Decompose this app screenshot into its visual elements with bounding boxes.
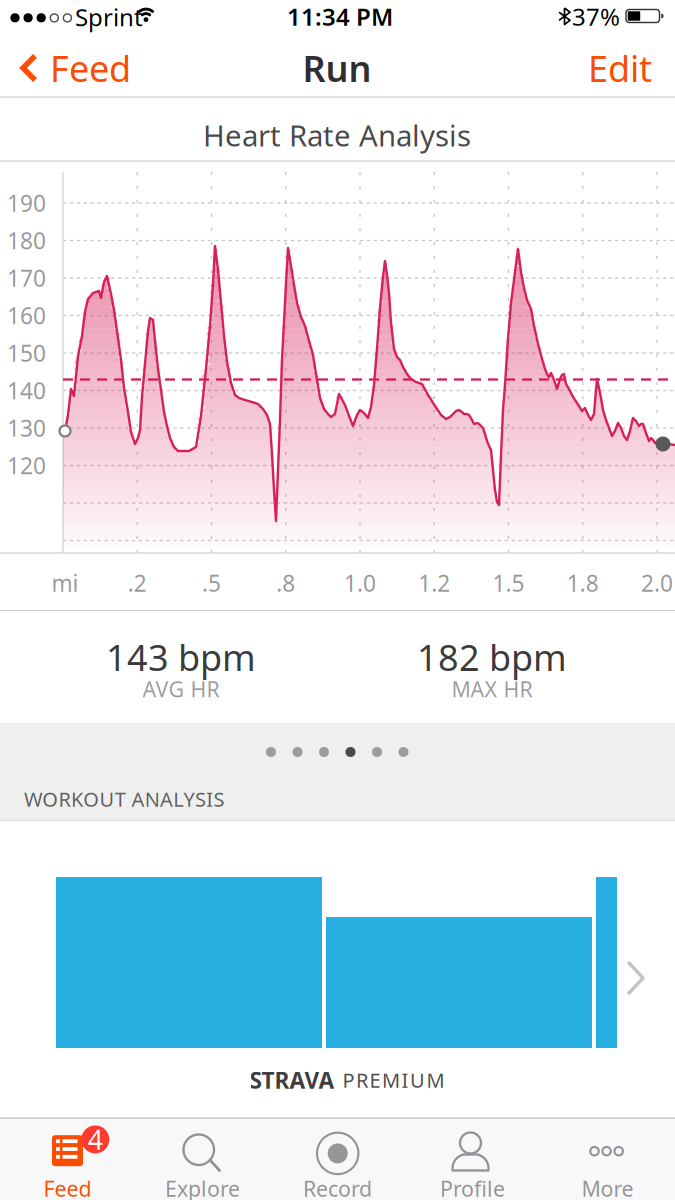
staticText: 37% [572, 1, 620, 32]
staticText: 160 [7, 300, 46, 330]
button[interactable]: Explore [135, 1118, 270, 1200]
staticText: PREMIUM [342, 1067, 444, 1093]
staticText: More [581, 1174, 633, 1200]
button[interactable]: More [540, 1118, 675, 1200]
staticText: 180 [7, 225, 46, 255]
button[interactable]: Workout analysis details [0, 830, 675, 1065]
button[interactable]: Profile [405, 1118, 540, 1200]
staticText: Explore [165, 1174, 240, 1200]
staticText: 1.2 [418, 568, 450, 598]
staticText: 143 bpm [106, 633, 256, 681]
staticText: AVG HR [142, 675, 219, 703]
staticText: Profile [440, 1174, 505, 1200]
staticText: 11:34 PM [287, 1, 393, 32]
staticText: STRAVA [249, 1065, 334, 1095]
staticText: 190 [7, 188, 46, 218]
staticText: 130 [7, 413, 46, 443]
staticText: 150 [7, 338, 46, 368]
staticText: Feed [43, 1174, 91, 1200]
staticText: Record [303, 1174, 372, 1200]
staticText: 182 bpm [417, 633, 567, 681]
staticText: Edit [588, 44, 652, 92]
staticText: 120 [7, 450, 46, 480]
button[interactable]: 4 [0, 1118, 135, 1200]
staticText: Heart Rate Analysis [203, 115, 471, 154]
button[interactable]: Record [270, 1118, 405, 1200]
staticText: 2.0 [641, 568, 673, 598]
button[interactable]: Back [20, 46, 180, 90]
staticText: Run [302, 44, 371, 92]
staticText: Sprint [75, 1, 143, 33]
staticText: WORKOUT ANALYSIS [24, 786, 224, 812]
staticText: .8 [276, 568, 295, 598]
staticText: 140 [7, 375, 46, 405]
staticText: 1.8 [567, 568, 599, 598]
staticText: .5 [202, 568, 221, 598]
staticText: 170 [7, 263, 46, 293]
button[interactable]: Edit [580, 46, 660, 90]
staticText: 1.0 [344, 568, 376, 598]
staticText: 4 [88, 1122, 103, 1157]
staticText: 1.5 [492, 568, 524, 598]
staticText: .2 [128, 568, 147, 598]
staticText: mi [51, 568, 78, 598]
staticText: Feed [50, 44, 131, 92]
staticText: MAX HR [451, 675, 532, 703]
